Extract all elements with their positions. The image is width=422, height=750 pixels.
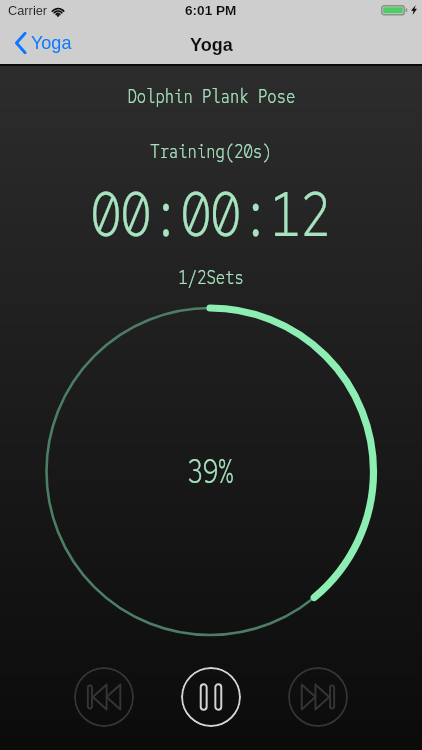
staticText: Yoga bbox=[190, 35, 233, 55]
button[interactable]: Pause bbox=[181, 667, 241, 727]
staticText: Training(20s) bbox=[150, 137, 272, 165]
button[interactable]: Next bbox=[288, 667, 348, 727]
staticText: 00:00:12 bbox=[91, 173, 331, 255]
button[interactable]: Yoga bbox=[0, 29, 84, 61]
staticText: Carrier bbox=[8, 3, 48, 17]
button[interactable]: Previous bbox=[74, 667, 134, 727]
staticText: 1/2Sets bbox=[179, 263, 244, 291]
staticText: 6:01 PM bbox=[185, 3, 237, 18]
staticText: Dolphin Plank Pose bbox=[127, 82, 295, 110]
staticText: Yoga bbox=[31, 33, 72, 53]
staticText: 39% bbox=[188, 447, 234, 493]
